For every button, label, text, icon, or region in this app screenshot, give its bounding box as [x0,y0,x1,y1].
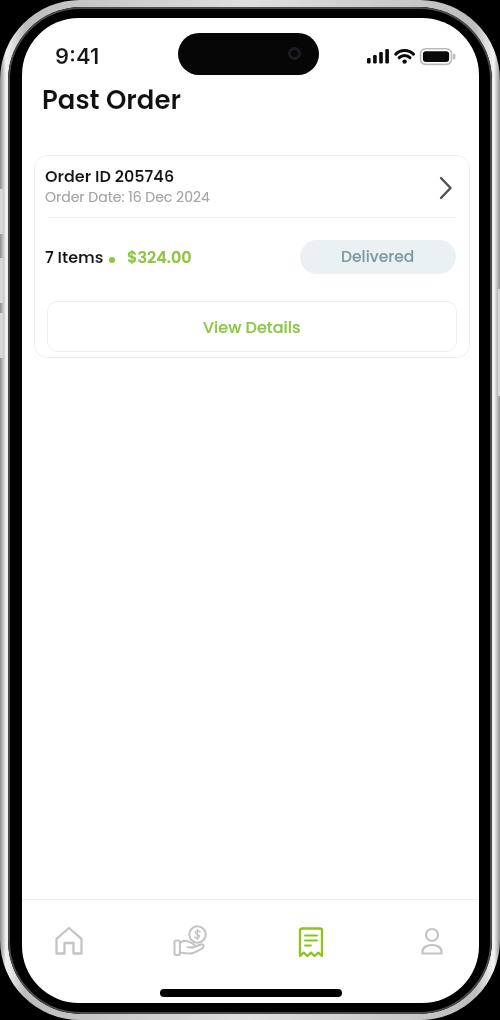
button[interactable] [294,925,328,959]
button[interactable]: Order ID 205746 [34,155,470,217]
button[interactable]: Delivered [300,240,456,274]
staticText: 9:41 [55,43,100,70]
button[interactable] [415,925,449,959]
staticText: Delivered [341,246,415,268]
staticText: Past Order [42,82,181,118]
staticText: $324.00 [127,246,192,268]
staticText: 7 Items [45,246,104,268]
staticText: View Details [203,316,301,338]
staticText: Order ID 205746 [45,165,175,187]
button[interactable]: View Details [47,301,457,352]
staticText: Order Date: 16 Dec 2024 [45,187,210,207]
button[interactable] [173,925,207,959]
button[interactable] [52,925,86,959]
